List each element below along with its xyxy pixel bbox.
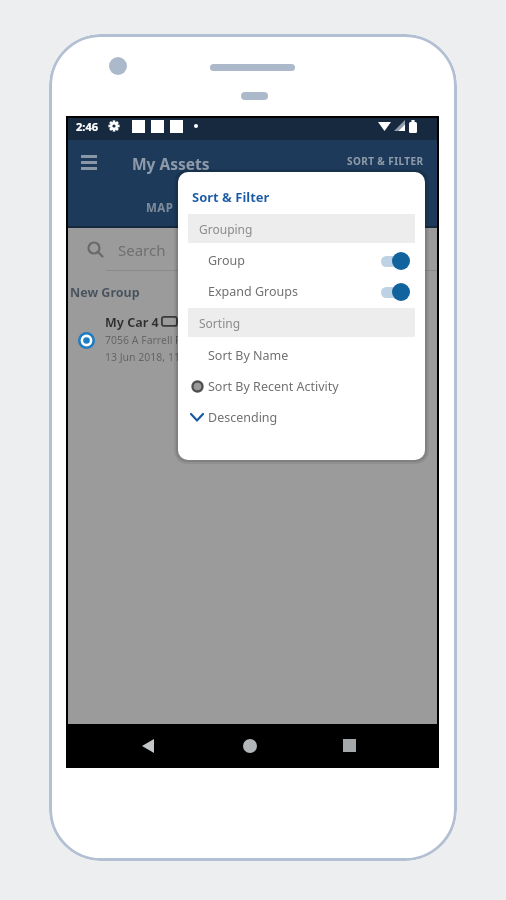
- staticText: Descending: [208, 409, 278, 426]
- button[interactable]: Sort By Name: [178, 342, 425, 368]
- button[interactable]: [381, 252, 410, 270]
- button[interactable]: [74, 148, 104, 176]
- staticText: 7056 A Farrell Rd: [105, 333, 189, 347]
- staticText: 2:46: [76, 119, 98, 134]
- staticText: Expand Groups: [208, 283, 298, 300]
- staticText: Sort & Filter: [192, 188, 270, 206]
- button[interactable]: Sort By Recent Activity: [178, 373, 425, 400]
- button[interactable]: Group: [178, 248, 425, 273]
- staticText: Search: [118, 240, 166, 260]
- staticText: My Assets: [132, 153, 210, 174]
- staticText: New Group: [70, 284, 140, 301]
- button[interactable]: Search: [68, 228, 437, 271]
- staticText: Group: [208, 252, 245, 269]
- staticText: Sort By Name: [208, 347, 289, 364]
- button[interactable]: [132, 724, 164, 767]
- staticText: Sorting: [199, 315, 241, 331]
- staticText: 13 Jun 2018, 11:22: [105, 350, 195, 364]
- staticText: Sort By Recent Activity: [208, 378, 339, 395]
- button[interactable]: [381, 283, 410, 301]
- staticText: SORT & FILTER: [347, 154, 424, 168]
- button[interactable]: MAP: [68, 188, 252, 228]
- button[interactable]: SORT & FILTER: [347, 154, 424, 168]
- staticText: MAP: [146, 200, 174, 216]
- button[interactable]: Descending: [178, 404, 425, 431]
- button[interactable]: Expand Groups: [178, 279, 425, 304]
- staticText: My Car 4: [105, 314, 159, 331]
- button[interactable]: [333, 724, 365, 767]
- button[interactable]: My Car 4: [68, 308, 437, 368]
- staticText: Grouping: [199, 221, 253, 237]
- button[interactable]: [234, 724, 266, 767]
